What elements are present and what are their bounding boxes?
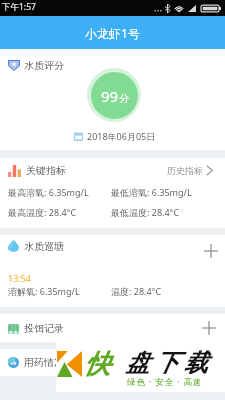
button[interactable]: 历史指标 (167, 163, 213, 176)
staticText: 绿色 · 安全 · 高速 (127, 376, 203, 388)
staticText: 下午1:57 (2, 1, 36, 13)
staticText: 分 (119, 92, 129, 105)
staticText: 2018年06月05日 (87, 130, 156, 142)
button[interactable]: 添加用药记录 (199, 353, 219, 373)
staticText: 盘下载 (123, 348, 210, 378)
staticText: 关键指标 (26, 164, 66, 177)
staticText: 最低温度: 28.4°C (111, 206, 180, 218)
staticText: 投饵记录 (24, 322, 64, 335)
staticText: 最高溶氧: 6.35mg/L (8, 186, 89, 198)
staticText: 用药情况 (24, 356, 64, 369)
staticText: 小龙虾1号 (85, 25, 140, 41)
staticText: 最高温度: 28.4°C (8, 206, 77, 218)
staticText: 最低溶氧: 6.35mg/L (111, 186, 192, 198)
staticText: 水质巡塘 (24, 240, 64, 253)
staticText: 99 (101, 86, 119, 106)
staticText: 历史指标 (167, 165, 203, 176)
button[interactable]: 添加巡塘记录 (201, 241, 221, 261)
button[interactable]: 投饵记录 (0, 314, 225, 342)
staticText: 快 (84, 348, 110, 381)
staticText: 温度: 28.4°C (111, 285, 162, 297)
staticText: 水质评分 (24, 59, 64, 72)
staticText: 溶解氧: 6.35mg/L (8, 285, 80, 297)
button[interactable]: 小龙虾1号 (0, 16, 225, 49)
staticText: 13:54 (8, 272, 32, 284)
button[interactable]: 添加投饵记录 (199, 318, 219, 338)
button[interactable]: 用药情况 (0, 349, 225, 376)
